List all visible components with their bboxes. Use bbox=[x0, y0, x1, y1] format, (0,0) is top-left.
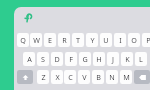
button[interactable]: Shift bbox=[17, 70, 33, 84]
button[interactable]: T bbox=[72, 33, 84, 47]
staticText: G bbox=[82, 54, 88, 64]
staticText: M bbox=[123, 72, 130, 82]
button[interactable]: Z bbox=[37, 70, 49, 84]
staticText: A bbox=[27, 54, 32, 64]
staticText: V bbox=[82, 72, 87, 82]
staticText: Y bbox=[90, 35, 95, 45]
button[interactable]: D bbox=[51, 52, 63, 66]
staticText: X bbox=[55, 72, 60, 82]
staticText: D bbox=[54, 54, 60, 64]
button[interactable]: C bbox=[64, 70, 76, 84]
button[interactable]: X bbox=[51, 70, 63, 84]
button[interactable]: A bbox=[23, 52, 35, 66]
staticText: F bbox=[69, 54, 73, 64]
button[interactable]: S bbox=[37, 52, 49, 66]
button[interactable]: Sticker suggestions bbox=[22, 12, 34, 24]
staticText: J bbox=[112, 54, 114, 64]
staticText: C bbox=[68, 72, 73, 82]
staticText: Q bbox=[20, 35, 26, 45]
staticText: K bbox=[125, 54, 130, 64]
staticText: I bbox=[119, 35, 122, 45]
button[interactable]: H bbox=[93, 52, 105, 66]
staticText: L bbox=[139, 54, 143, 64]
button[interactable]: L bbox=[135, 52, 147, 66]
button[interactable]: W bbox=[30, 33, 42, 47]
staticText: E bbox=[48, 35, 52, 45]
button[interactable]: V bbox=[78, 70, 90, 84]
button[interactable]: K bbox=[121, 52, 133, 66]
button[interactable]: Y bbox=[86, 33, 98, 47]
staticText: N bbox=[109, 72, 115, 82]
button[interactable]: N bbox=[106, 70, 118, 84]
button[interactable]: U bbox=[100, 33, 112, 47]
staticText: P bbox=[146, 35, 150, 45]
button[interactable]: F bbox=[65, 52, 77, 66]
staticText: Z bbox=[41, 72, 46, 82]
button[interactable]: Q bbox=[17, 33, 29, 47]
button[interactable]: R bbox=[58, 33, 70, 47]
staticText: O bbox=[131, 35, 137, 45]
button[interactable]: O bbox=[128, 33, 140, 47]
staticText: R bbox=[62, 35, 67, 45]
button[interactable]: M bbox=[120, 70, 132, 84]
button[interactable]: E bbox=[44, 33, 56, 47]
staticText: U bbox=[103, 35, 109, 45]
button[interactable]: I bbox=[114, 33, 126, 47]
button[interactable]: Backspace bbox=[134, 70, 150, 84]
button[interactable]: J bbox=[107, 52, 119, 66]
staticText: H bbox=[96, 54, 102, 64]
staticText: T bbox=[76, 35, 80, 45]
button[interactable]: B bbox=[92, 70, 104, 84]
button[interactable]: G bbox=[79, 52, 91, 66]
staticText: S bbox=[41, 54, 45, 64]
staticText: B bbox=[96, 72, 101, 82]
staticText: W bbox=[33, 35, 40, 45]
button[interactable]: P bbox=[142, 33, 150, 47]
